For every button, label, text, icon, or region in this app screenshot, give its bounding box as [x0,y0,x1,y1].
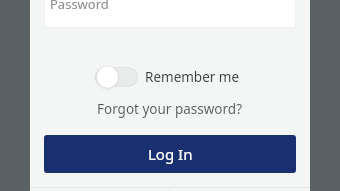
button[interactable]: Password [44,0,296,28]
staticText: Forgot your password? [97,100,243,118]
staticText: Log In [148,144,193,164]
button[interactable]: Forgot your password? [91,98,249,120]
button[interactable]: Remember me toggle [95,65,240,89]
button[interactable]: Log In [44,135,296,173]
staticText: Password [50,0,109,13]
staticText: Remember me [145,68,240,86]
